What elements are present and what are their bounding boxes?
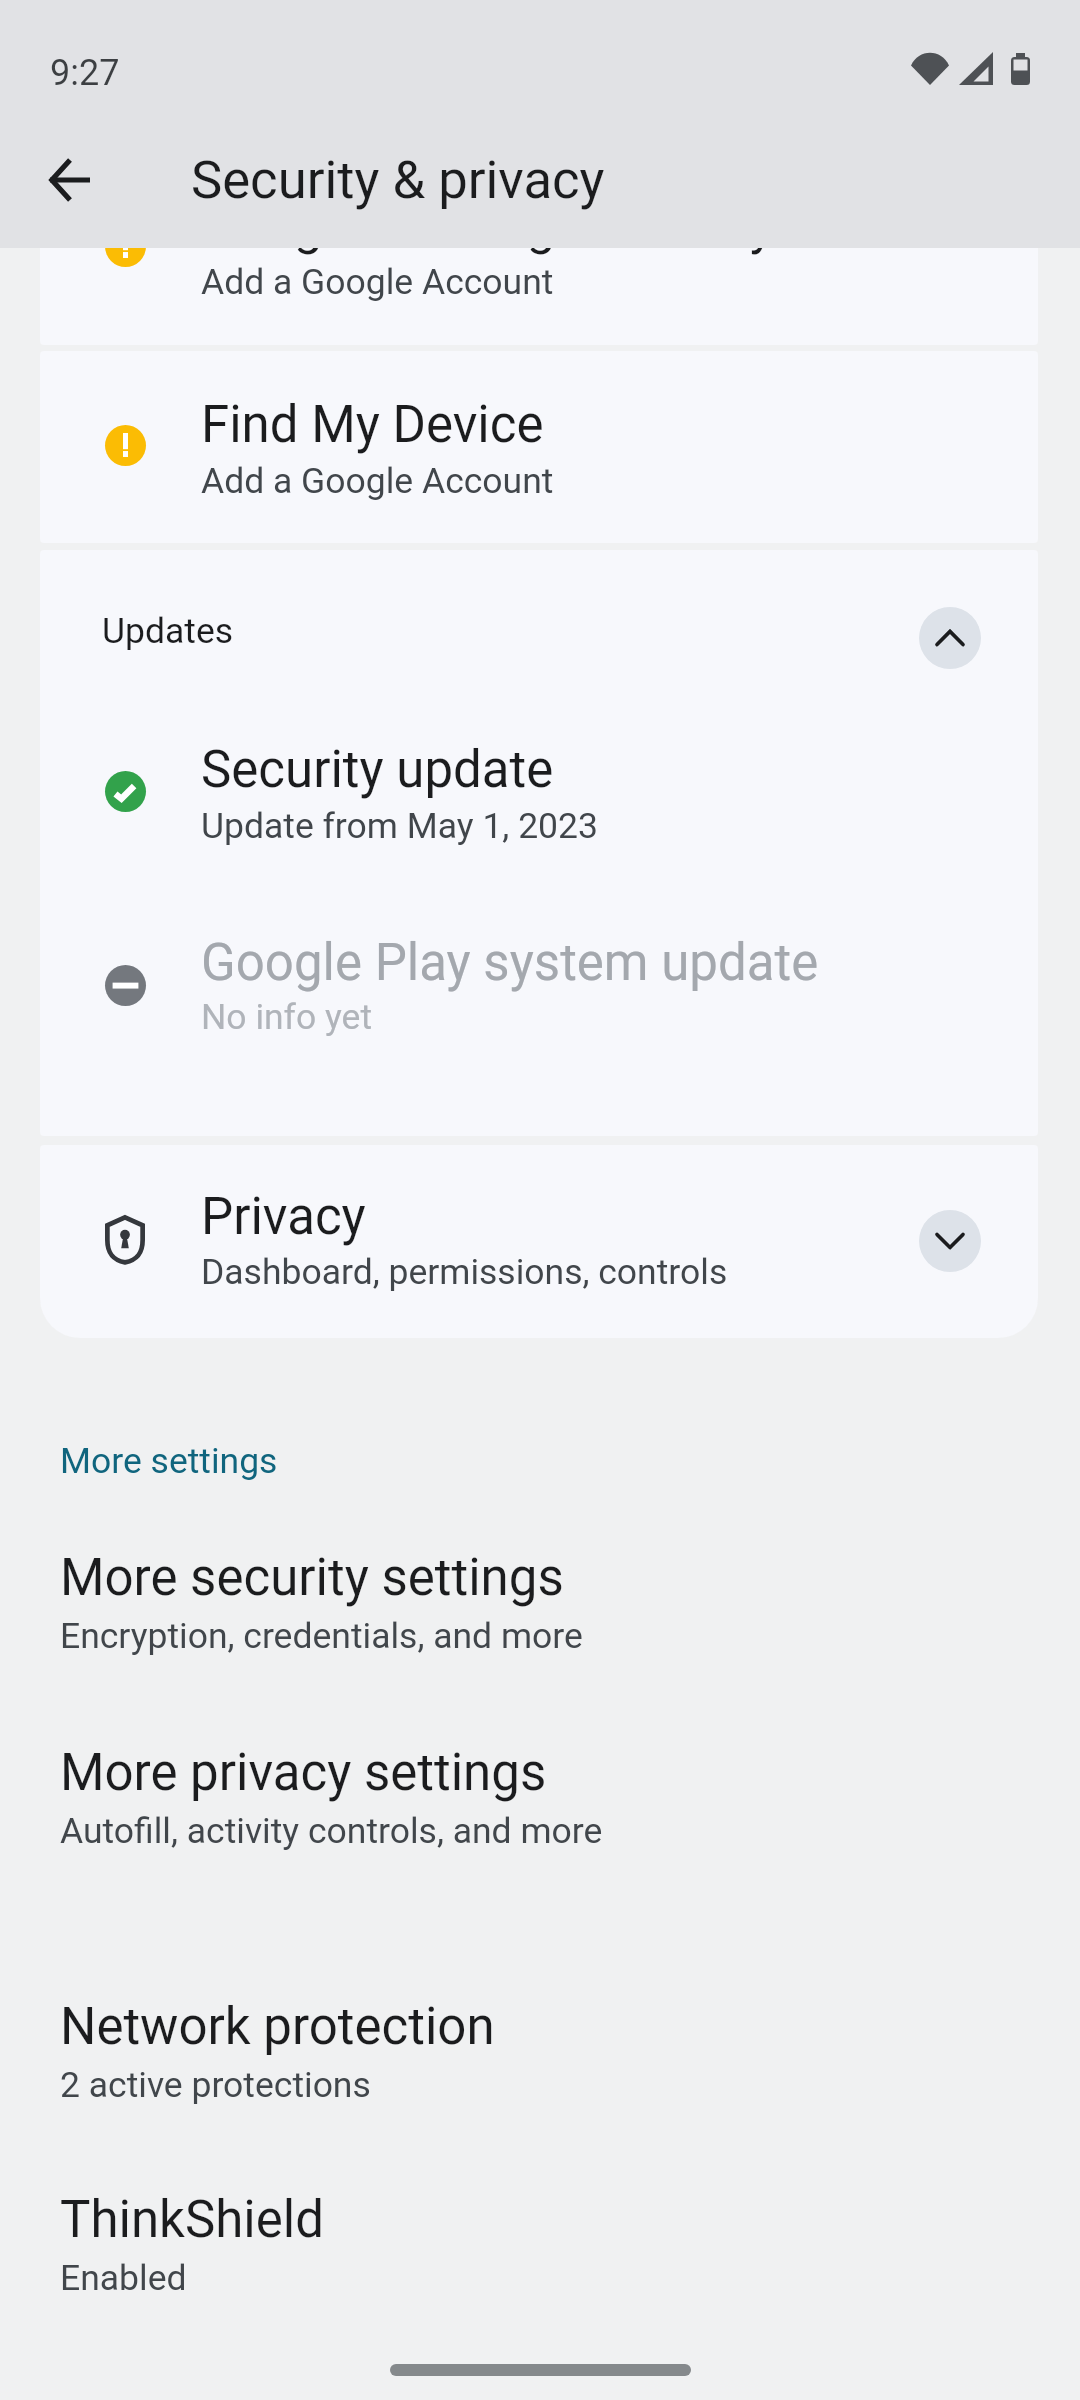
staticText: Privacy [201,1186,366,1247]
staticText: Add a Google Account [201,260,554,303]
button[interactable]: Updates [40,550,1038,700]
button[interactable]: Google Play system update [40,893,1038,1086]
button[interactable]: Back [24,134,116,226]
staticText: Google message security [201,195,774,256]
button[interactable]: More security settings [0,1528,1080,1688]
staticText: Google Play system update [201,932,819,993]
staticText: Update from May 1, 2023 [201,804,598,847]
button[interactable]: Security update [40,700,1038,893]
button[interactable]: Expand Privacy [919,1210,981,1272]
button[interactable]: ThinkShield [0,2170,1080,2330]
button[interactable]: Find My Device [40,351,1038,543]
button[interactable]: More privacy settings [0,1723,1080,1883]
staticText: No info yet [201,995,373,1038]
staticText: More privacy settings [60,1742,547,1803]
staticText: Autofill, activity controls, and more [60,1809,603,1852]
staticText: 9:27 [50,51,120,94]
button[interactable]: Privacy [40,1145,1038,1338]
staticText: Find My Device [201,394,544,455]
button[interactable]: More settings [0,1415,1080,1511]
staticText: Enabled [60,2256,187,2299]
button[interactable]: Collapse Updates [919,607,981,669]
staticText: ThinkShield [60,2189,324,2250]
staticText: Updates [102,609,234,652]
staticText: 2 active protections [60,2063,371,2106]
staticText: More security settings [60,1547,564,1608]
staticText: Security & privacy [191,148,605,211]
staticText: Add a Google Account [201,459,554,502]
button[interactable]: Google message security [40,152,1038,345]
staticText: Dashboard, permissions, controls [201,1250,728,1293]
staticText: Encryption, credentials, and more [60,1614,583,1657]
staticText: More settings [60,1439,278,1482]
staticText: Security update [201,739,554,800]
button[interactable]: Network protection [0,1977,1080,2137]
staticText: Network protection [60,1996,495,2057]
